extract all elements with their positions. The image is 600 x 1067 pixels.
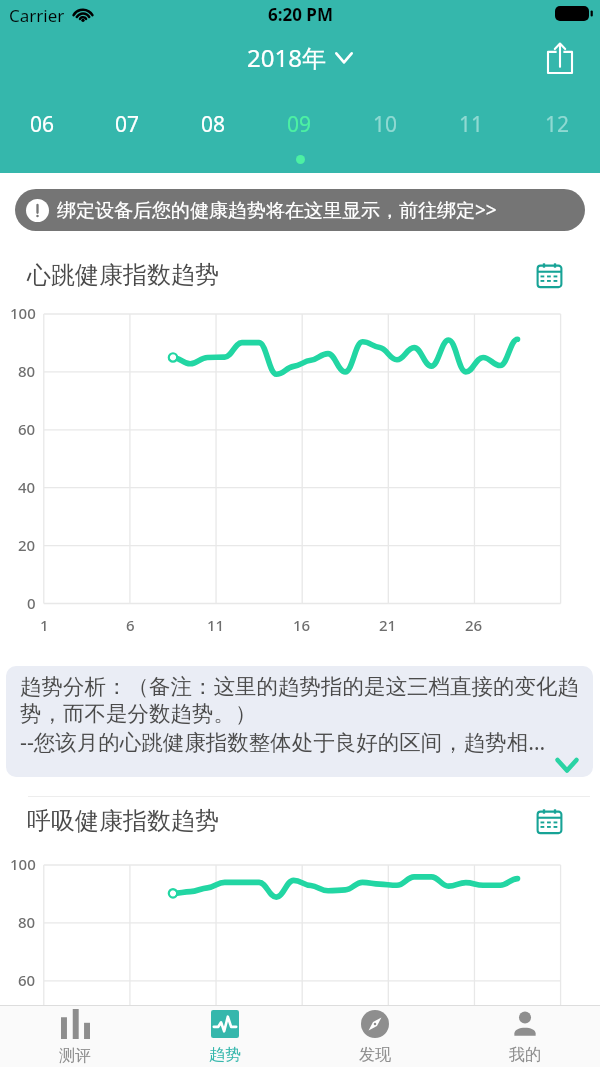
staticText: 20 [18,535,36,555]
staticText: 趋势分析：（备注：这里的趋势指的是这三档直接的变化趋 [20,673,579,700]
button[interactable]: 12 [514,87,600,161]
staticText: 60 [18,419,36,439]
button[interactable]: 我的 [450,1006,600,1067]
staticText: 09 [287,110,312,139]
button[interactable]: Calendar [530,256,568,294]
staticText: 呼吸健康指数趋势 [27,806,219,836]
staticText: 100 [10,303,36,323]
staticText: 11 [459,110,484,139]
staticText: 6:20 PM [268,3,333,26]
button[interactable]: 绑定设备后您的健康趋势将在这里显示，前往绑定>> [15,189,585,231]
staticText: 11 [207,615,225,635]
staticText: 发现 [359,1045,391,1065]
button[interactable]: 趋势分析：（备注：这里的趋势指的是这三档直接的变化趋 [6,666,593,777]
button[interactable]: 2018年 [239,36,361,79]
button[interactable]: 06 [0,87,85,161]
staticText: 1 [40,615,49,635]
staticText: 10 [373,110,398,139]
staticText: 6 [126,615,135,635]
staticText: 测评 [59,1046,91,1066]
staticText: 势，而不是分数趋势。） [20,700,257,727]
staticText: 趋势 [209,1045,241,1065]
staticText: 绑定设备后您的健康趋势将在这里显示，前往绑定>> [57,197,497,223]
staticText: 16 [293,615,311,635]
button[interactable]: Share [538,36,582,80]
staticText: 0 [27,593,36,613]
staticText: Carrier [9,4,65,27]
staticText: 06 [30,110,55,139]
button[interactable]: 发现 [300,1006,450,1067]
staticText: 我的 [509,1045,541,1065]
button[interactable]: 07 [85,87,170,161]
button[interactable]: 08 [170,87,256,161]
button[interactable]: 趋势 [150,1006,300,1067]
staticText: 80 [18,361,36,381]
button[interactable]: 11 [428,87,514,161]
staticText: 08 [201,110,226,139]
staticText: 21 [379,615,397,635]
button[interactable]: 10 [342,87,428,161]
staticText: --您该月的心跳健康指数整体处于良好的区间，趋势相… [20,727,546,756]
staticText: 60 [18,970,36,990]
button[interactable]: 测评 [0,1006,150,1067]
staticText: 12 [545,110,570,139]
button[interactable]: Calendar [530,802,568,840]
button[interactable]: 09 [256,87,342,161]
staticText: 40 [18,477,36,497]
staticText: 80 [18,912,36,932]
staticText: 07 [115,110,140,139]
staticText: 100 [10,854,36,874]
staticText: 心跳健康指数趋势 [27,260,219,290]
staticText: 2018年 [247,41,326,74]
staticText: 26 [465,615,483,635]
